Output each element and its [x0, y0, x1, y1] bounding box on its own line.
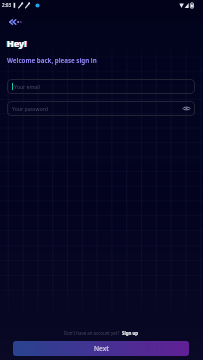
- button[interactable]: Your password: [7, 101, 195, 116]
- staticText: Sign up: [122, 330, 139, 336]
- button[interactable]: Your email: [7, 79, 195, 94]
- staticText: Welcome back, please sign in: [7, 56, 97, 64]
- button[interactable]: Show password: [183, 105, 190, 112]
- staticText: Your password: [12, 105, 49, 112]
- staticText: Hey!: [7, 37, 27, 49]
- staticText: Hey!: [6, 37, 26, 49]
- staticText: Next: [94, 344, 109, 353]
- staticText: Hey!: [8, 37, 28, 49]
- button[interactable]: Next: [13, 341, 189, 356]
- staticText: Don't have an account yet?: [64, 330, 120, 336]
- staticText: Your email: [14, 83, 40, 90]
- button[interactable]: Back: [6, 17, 26, 27]
- staticText: 2:03: [2, 2, 12, 8]
- button[interactable]: Sign up: [122, 330, 139, 336]
